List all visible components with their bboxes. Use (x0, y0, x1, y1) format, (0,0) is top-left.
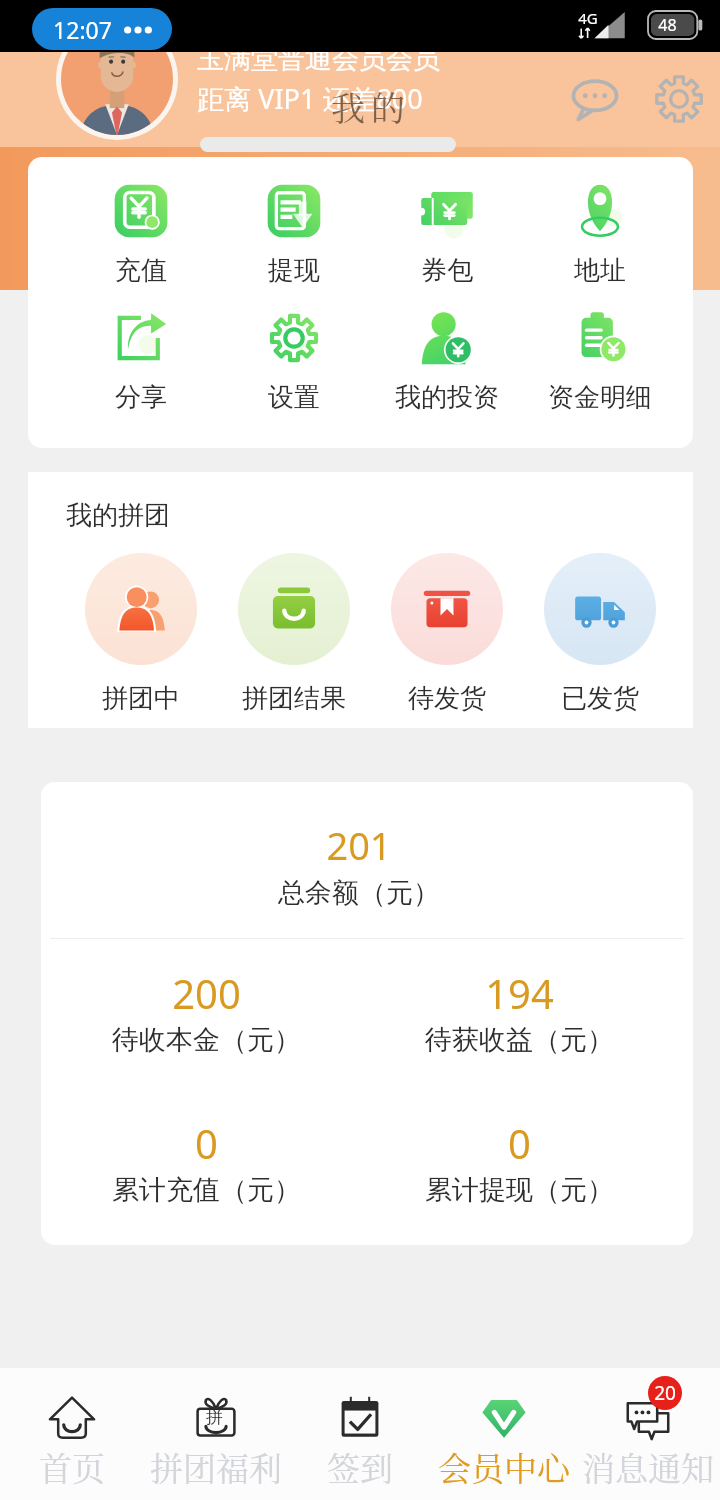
staticText: 总余额（元） (278, 876, 440, 910)
button[interactable]: 签到 (288, 1394, 432, 1490)
staticText: 我的拼团 (66, 499, 170, 532)
staticText: 待收本金（元） (112, 1023, 301, 1057)
staticText: 待发货 (408, 682, 486, 715)
staticText: 首页 (39, 1443, 105, 1490)
button[interactable]: 194 (363, 966, 676, 1057)
staticText: 累计充值（元） (112, 1173, 301, 1207)
staticText: 拼团福利 (150, 1443, 282, 1490)
button[interactable]: 20 (576, 1394, 720, 1490)
staticText: 已发货 (561, 682, 639, 715)
button[interactable]: 设置 (217, 310, 370, 414)
button[interactable]: 充值 (64, 183, 217, 287)
staticText: 资金明细 (548, 381, 652, 414)
button[interactable]: 0 (50, 1116, 363, 1207)
button[interactable]: Messages (568, 72, 622, 126)
button[interactable]: 200 (50, 966, 363, 1057)
button[interactable]: Settings (652, 72, 706, 126)
button[interactable]: 我的投资 (370, 310, 523, 414)
staticText: 0 (195, 1116, 218, 1170)
staticText: 分享 (115, 381, 167, 414)
staticText: 设置 (268, 381, 320, 414)
button[interactable]: 分享 (64, 310, 217, 414)
staticText: 会员中心 (438, 1443, 570, 1490)
staticText: 提现 (268, 254, 320, 287)
staticText: 玉满堂普通会员会员 (197, 42, 440, 76)
staticText: 194 (485, 966, 554, 1020)
button[interactable]: 资金明细 (523, 310, 676, 414)
staticText: 我的 (331, 82, 412, 131)
staticText: 累计提现（元） (425, 1173, 614, 1207)
button[interactable]: Avatar (61, 23, 173, 135)
button[interactable]: 会员中心 (432, 1394, 576, 1490)
button[interactable]: 券包 (370, 183, 523, 287)
staticText: 12:07 (53, 14, 112, 45)
staticText: 我的投资 (395, 381, 499, 414)
button[interactable]: 首页 (0, 1394, 144, 1490)
button[interactable]: 拼团结果 (217, 553, 370, 715)
staticText: 签到 (327, 1443, 393, 1490)
staticText: 20 (654, 1380, 676, 1406)
staticText: 券包 (421, 254, 473, 287)
staticText: 0 (508, 1116, 531, 1170)
staticText: 200 (172, 966, 241, 1020)
staticText: 4G (578, 8, 598, 28)
staticText: 距离 VIP1 还差800 (197, 80, 423, 117)
button[interactable]: 0 (363, 1116, 676, 1207)
button[interactable]: 提现 (217, 183, 370, 287)
staticText: 充值 (115, 254, 167, 287)
staticText: 地址 (574, 254, 626, 287)
staticText: 201 (326, 819, 392, 871)
button[interactable]: 地址 (523, 183, 676, 287)
staticText: 拼团中 (102, 682, 180, 715)
button[interactable]: 拼团中 (64, 553, 217, 715)
staticText: 消息通知 (582, 1443, 714, 1490)
staticText: 待获收益（元） (425, 1023, 614, 1057)
staticText: 拼 (206, 1407, 223, 1428)
button[interactable]: 拼 (144, 1394, 288, 1490)
staticText: 拼团结果 (242, 682, 346, 715)
button[interactable]: 待发货 (370, 553, 523, 715)
button[interactable]: 已发货 (523, 553, 676, 715)
staticText: 48 (658, 14, 677, 36)
